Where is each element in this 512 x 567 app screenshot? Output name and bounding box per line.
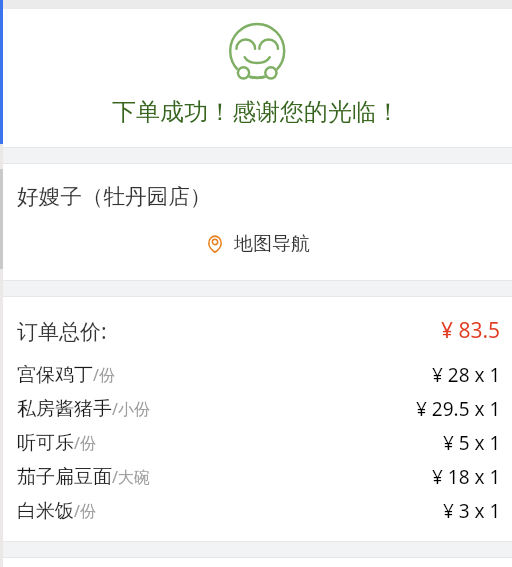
staticText: 下单成功！感谢您的光临！ bbox=[112, 97, 400, 127]
staticText: /大碗 bbox=[112, 466, 150, 488]
staticText: /份 bbox=[93, 364, 115, 386]
button[interactable]: 听可乐 bbox=[0, 426, 512, 460]
staticText: ¥ 29.5 x 1 bbox=[416, 396, 501, 422]
staticText: ¥ 28 x 1 bbox=[432, 362, 501, 388]
staticText: 私房酱猪手 bbox=[17, 397, 112, 421]
staticText: /份 bbox=[74, 500, 96, 522]
staticText: ¥ 3 x 1 bbox=[443, 498, 501, 524]
button[interactable]: 私房酱猪手 bbox=[0, 392, 512, 426]
staticText: 宫保鸡丁 bbox=[17, 363, 93, 387]
staticText: ¥ 5 x 1 bbox=[443, 430, 501, 456]
other: 地图导航 bbox=[208, 235, 222, 253]
staticText: /份 bbox=[74, 432, 96, 454]
staticText: /小份 bbox=[112, 398, 150, 420]
staticText: ¥ 18 x 1 bbox=[432, 464, 501, 490]
button[interactable]: 白米饭 bbox=[0, 494, 512, 528]
staticText: 地图导航 bbox=[234, 232, 310, 256]
staticText: 订单总价: bbox=[17, 317, 107, 346]
button[interactable]: 地图导航 bbox=[201, 227, 317, 261]
staticText: ¥ 83.5 bbox=[441, 316, 501, 345]
button[interactable]: 茄子扁豆面 bbox=[0, 460, 512, 494]
button[interactable]: 宫保鸡丁 bbox=[0, 358, 512, 392]
button[interactable]: 订单总价: bbox=[0, 297, 512, 358]
staticText: 听可乐 bbox=[17, 431, 74, 455]
staticText: 白米饭 bbox=[17, 499, 74, 523]
staticText: 好嫂子（牡丹园店） bbox=[17, 183, 212, 210]
staticText: 茄子扁豆面 bbox=[17, 465, 112, 489]
